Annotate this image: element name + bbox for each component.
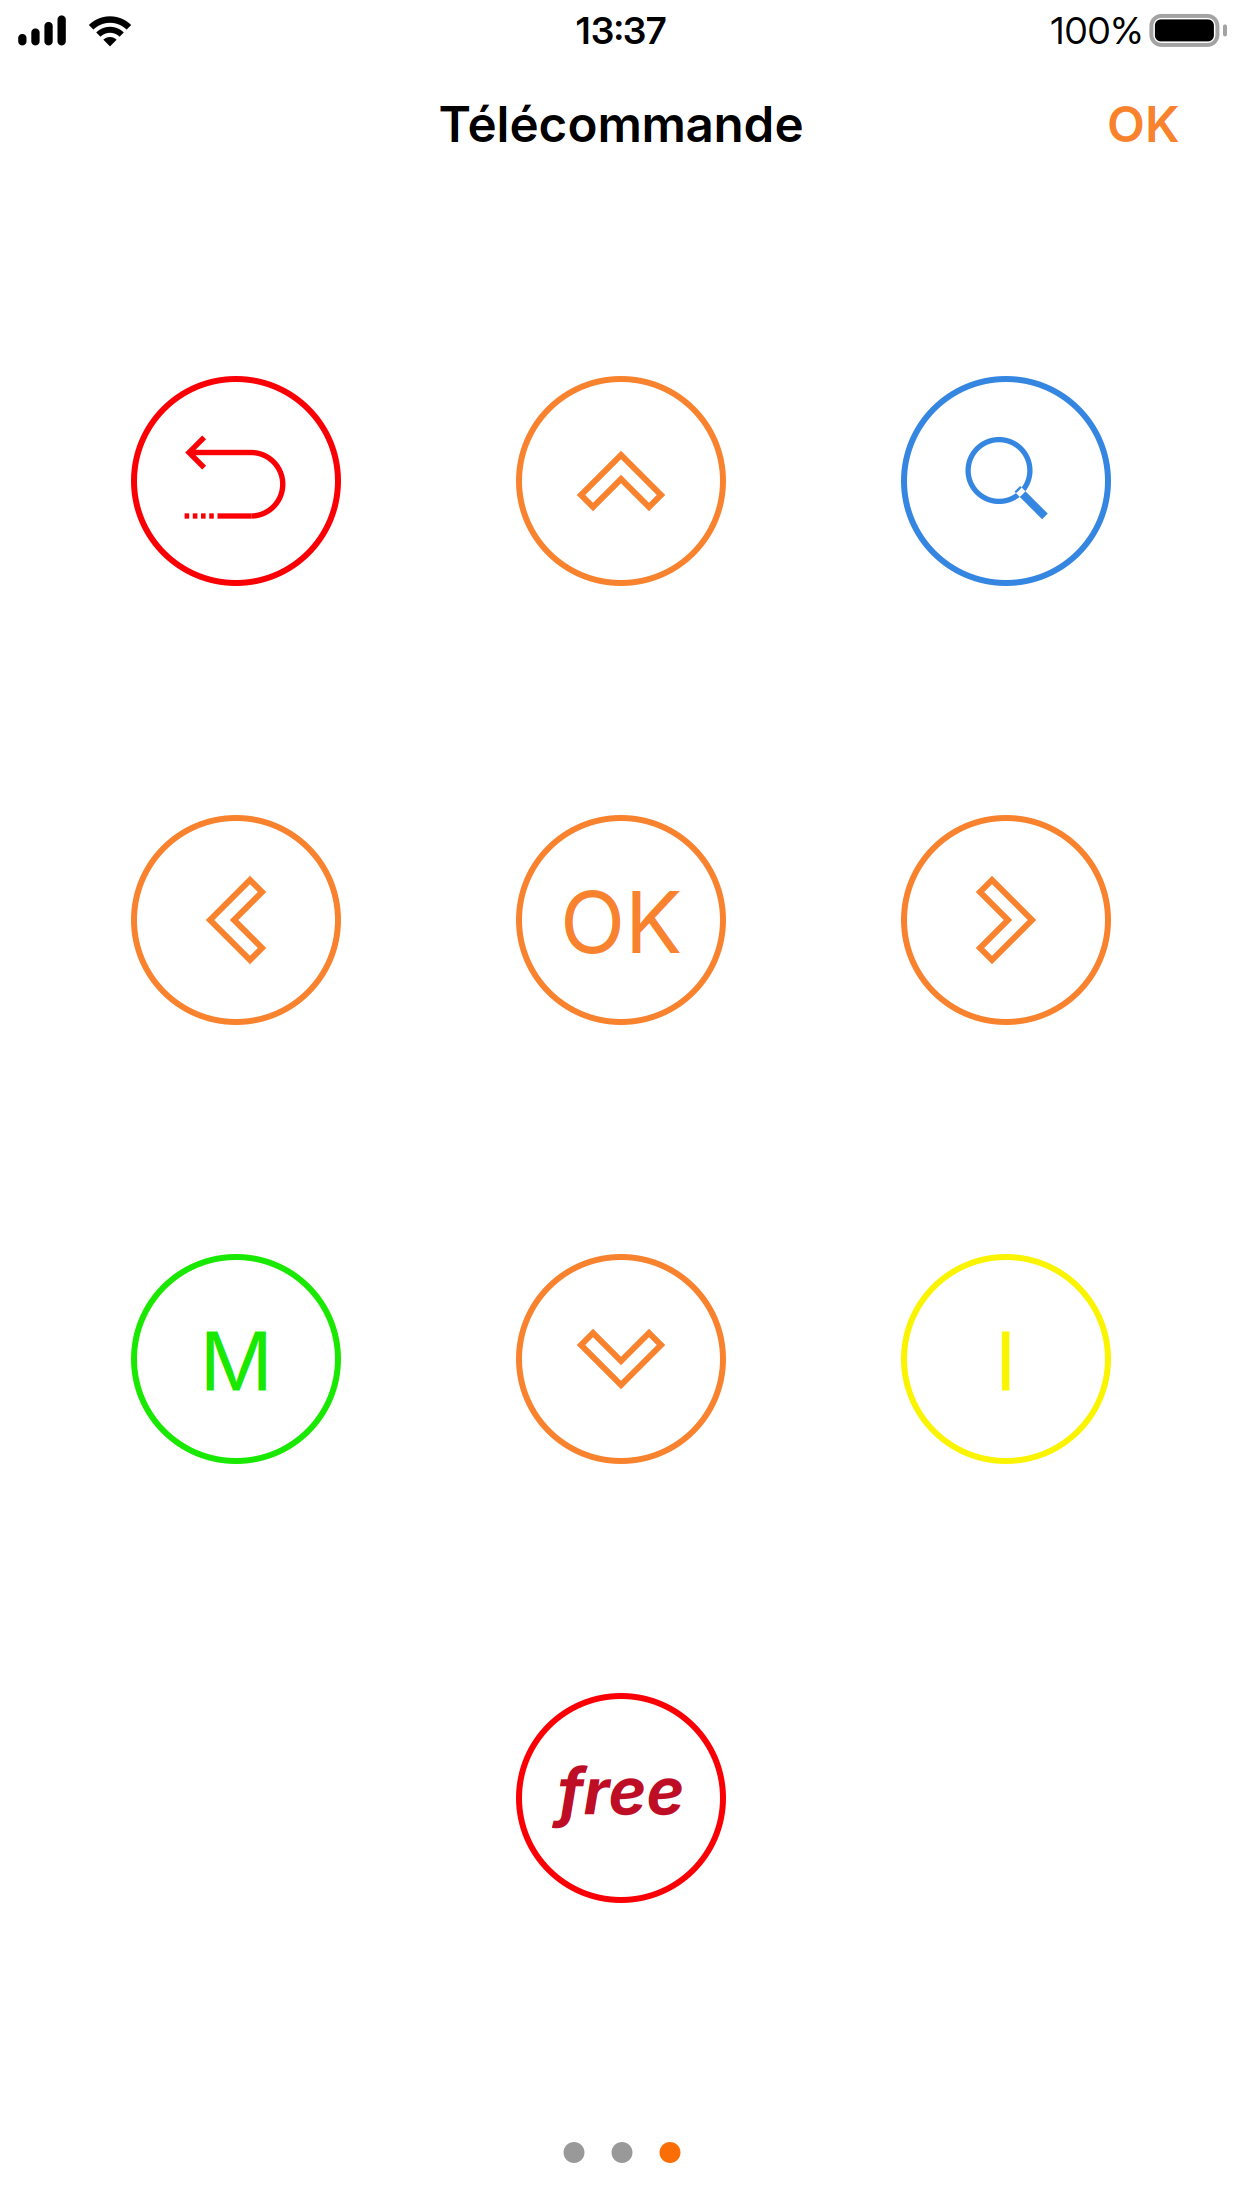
staticText: free bbox=[557, 1752, 684, 1830]
button[interactable]: free bbox=[516, 1693, 726, 1903]
button[interactable]: Recherche bbox=[901, 376, 1111, 586]
button[interactable]: Info bbox=[901, 1254, 1111, 1464]
staticText: 13:37 bbox=[576, 8, 666, 53]
button[interactable]: Retour bbox=[131, 376, 341, 586]
staticText: 100% bbox=[1050, 8, 1143, 53]
button[interactable]: OK bbox=[516, 815, 726, 1025]
button[interactable]: Gauche bbox=[131, 815, 341, 1025]
staticText: Télécommande bbox=[438, 94, 803, 154]
button[interactable]: Bas bbox=[516, 1254, 726, 1464]
button[interactable]: Haut bbox=[516, 376, 726, 586]
button[interactable]: OK bbox=[1077, 82, 1210, 166]
staticText: OK bbox=[1107, 94, 1180, 154]
staticText: M bbox=[199, 1312, 272, 1410]
staticText: OK bbox=[560, 870, 682, 974]
button[interactable]: Droite bbox=[901, 815, 1111, 1025]
staticText: I bbox=[995, 1312, 1017, 1410]
button[interactable]: Menu bbox=[131, 1254, 341, 1464]
